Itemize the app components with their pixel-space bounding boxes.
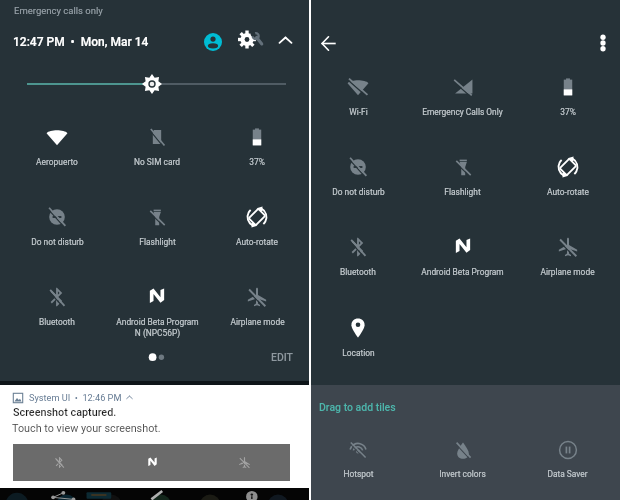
button[interactable]: Android Beta Program: [410, 236, 515, 277]
button[interactable]: Emergency Calls Only: [410, 76, 515, 117]
button[interactable]: No SIM card: [107, 126, 207, 167]
button[interactable]: Airplane mode: [207, 286, 307, 327]
staticText: Emergency Calls Only: [422, 107, 503, 117]
button[interactable]: User account: [198, 27, 227, 56]
staticText: 12:47 PM • Mon, Mar 14: [13, 35, 149, 49]
button[interactable]: System UI • 12:46 PM: [13, 392, 133, 403]
staticText: Invert colors: [439, 469, 486, 479]
staticText: Location: [342, 348, 375, 358]
button[interactable]: Wi-Fi: [306, 76, 410, 117]
button[interactable]: Hotspot: [306, 440, 410, 479]
button[interactable]: Android Beta Program N (NPC56P): [107, 286, 207, 338]
button[interactable]: Collapse: [271, 26, 300, 55]
staticText: Android Beta Program N (NPC56P): [116, 317, 199, 338]
staticText: Touch to view your screenshot.: [12, 422, 161, 435]
button[interactable]: Invert colors: [410, 440, 515, 479]
button[interactable]: More options: [586, 26, 620, 60]
button[interactable]: Brightness: [0, 71, 309, 97]
button[interactable]: Aeropuerto: [7, 126, 107, 167]
button[interactable]: Back: [310, 25, 346, 61]
staticText: Auto-rotate: [547, 187, 589, 197]
staticText: Screenshot captured.: [13, 406, 117, 419]
staticText: Airplane mode: [540, 267, 595, 277]
button[interactable]: EDIT: [271, 351, 293, 363]
staticText: EDIT: [271, 351, 293, 363]
staticText: Do not disturb: [31, 237, 84, 247]
button[interactable]: [13, 444, 290, 481]
staticText: Hotspot: [343, 469, 374, 479]
staticText: Airplane mode: [230, 317, 285, 327]
staticText: 37%: [560, 107, 576, 117]
staticText: Auto-rotate: [236, 237, 278, 247]
staticText: Flashlight: [444, 187, 481, 197]
staticText: Data Saver: [547, 469, 588, 479]
button[interactable]: Auto-rotate: [207, 206, 307, 247]
staticText: 37%: [249, 157, 265, 167]
staticText: Do not disturb: [332, 187, 385, 197]
button[interactable]: Flashlight: [410, 156, 515, 197]
button[interactable]: Flashlight: [107, 206, 207, 247]
staticText: Android Beta Program: [421, 267, 504, 277]
button[interactable]: Do not disturb: [306, 156, 410, 197]
staticText: Bluetooth: [340, 267, 376, 277]
staticText: Aeropuerto: [36, 157, 78, 167]
staticText: Wi-Fi: [349, 107, 368, 117]
button[interactable]: Airplane mode: [515, 236, 620, 277]
button[interactable]: Auto-rotate: [515, 156, 620, 197]
staticText: Drag to add tiles: [319, 401, 396, 413]
staticText: Bluetooth: [39, 317, 75, 327]
button[interactable]: 12:47 PM • Mon, Mar 14: [13, 28, 149, 56]
button[interactable]: Location: [306, 317, 410, 358]
staticText: Emergency calls only: [14, 5, 103, 16]
button[interactable]: 37%: [207, 126, 307, 167]
button[interactable]: Do not disturb: [7, 206, 107, 247]
button[interactable]: Bluetooth: [306, 236, 410, 277]
staticText: System UI • 12:46 PM: [29, 392, 122, 403]
button[interactable]: Data Saver: [515, 440, 620, 479]
button[interactable]: 37%: [515, 76, 620, 117]
button[interactable]: Settings: [237, 25, 266, 54]
staticText: Flashlight: [139, 237, 176, 247]
button[interactable]: Bluetooth: [7, 286, 107, 327]
staticText: No SIM card: [134, 157, 180, 167]
